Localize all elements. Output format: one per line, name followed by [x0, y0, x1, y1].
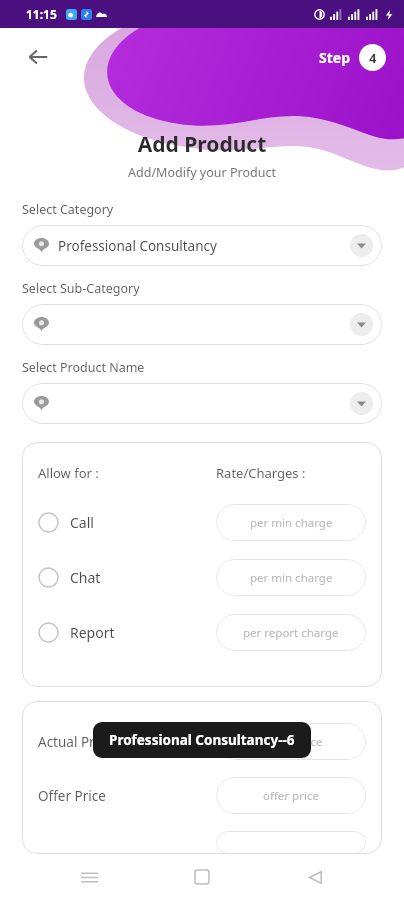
staticText: Report [70, 623, 115, 642]
staticText: per min charge [250, 570, 333, 586]
button[interactable]: Home [178, 854, 226, 900]
staticText: Actual Price [38, 733, 216, 751]
staticText: Call [70, 513, 94, 532]
button[interactable] [22, 383, 382, 424]
staticText: offer price [263, 788, 319, 804]
button[interactable]: Back [291, 854, 339, 900]
button[interactable]: Call [38, 512, 216, 533]
staticText: per min charge [250, 515, 333, 531]
button[interactable]: offer price [216, 777, 366, 814]
button[interactable]: Recents [65, 854, 113, 900]
staticText: Rate/Charges : [216, 464, 306, 482]
staticText: Offer Price [38, 787, 216, 805]
staticText: per report charge [243, 625, 339, 641]
button[interactable]: Chat [38, 567, 216, 588]
staticText: actual price [260, 734, 323, 750]
staticText: Add/Modify your Product [0, 164, 404, 181]
button[interactable]: Back [16, 35, 60, 79]
button[interactable]: Report [38, 622, 216, 643]
staticText: 4 [369, 49, 377, 67]
button[interactable]: per report charge [216, 614, 366, 651]
staticText: Professional Consultancy [58, 237, 350, 255]
button[interactable]: Step [315, 42, 390, 73]
staticText: Allow for : [38, 464, 216, 482]
button[interactable] [22, 304, 382, 345]
staticText: Select Category [22, 201, 114, 218]
staticText: Select Sub-Category [22, 280, 140, 297]
staticText: Step [319, 48, 350, 67]
button[interactable] [216, 831, 366, 854]
staticText: Select Product Name [22, 359, 145, 376]
staticText: Chat [70, 568, 101, 587]
staticText: Professional Consultancy--6 [109, 731, 295, 749]
staticText: Add Product [0, 130, 404, 159]
button[interactable]: Professional Consultancy [22, 225, 382, 266]
button[interactable]: actual price [216, 723, 366, 760]
button[interactable]: per min charge [216, 559, 366, 596]
staticText: 11:15 [26, 6, 57, 22]
button[interactable]: per min charge [216, 504, 366, 541]
